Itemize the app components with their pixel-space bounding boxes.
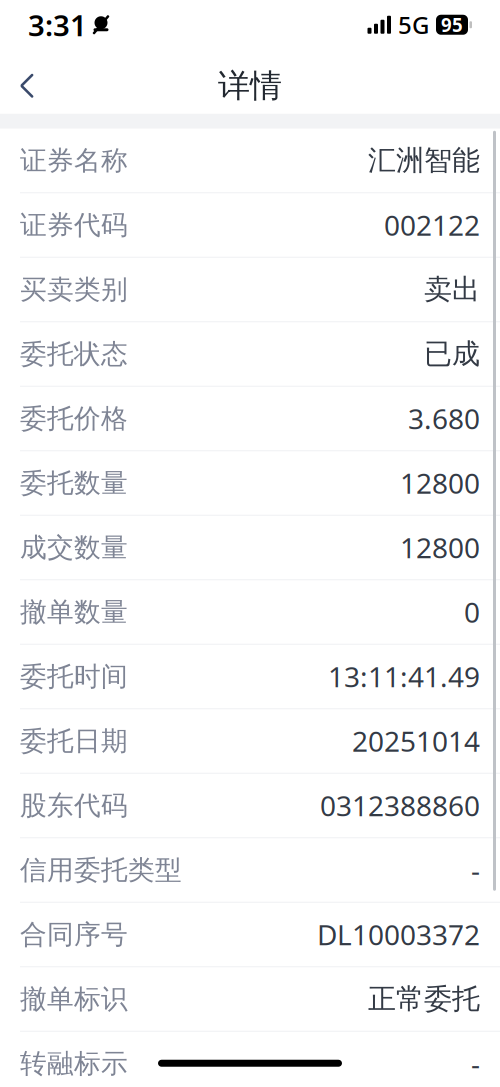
staticText: 委托状态 (20, 338, 128, 370)
staticText: 证券代码 (20, 209, 128, 241)
staticText: - (471, 851, 480, 889)
button[interactable]: 返回 (0, 60, 54, 112)
staticText: 委托日期 (20, 725, 128, 757)
staticText: 合同序号 (20, 918, 128, 951)
staticText: 汇洲智能 (368, 143, 480, 178)
staticText: 详情 (218, 66, 282, 105)
staticText: 3:31 (28, 5, 87, 44)
staticText: 信用委托类型 (20, 854, 182, 886)
staticText: 撤单数量 (20, 596, 128, 628)
staticText: 委托价格 (20, 402, 128, 435)
staticText: 已成 (424, 337, 480, 371)
staticText: 12800 (400, 529, 480, 566)
staticText: 委托数量 (20, 467, 128, 499)
staticText: 13:11:41.49 (328, 658, 480, 695)
staticText: 3.680 (408, 400, 480, 437)
staticText: 正常委托 (368, 982, 480, 1016)
staticText: 95 (441, 12, 463, 37)
staticText: 成交数量 (20, 531, 128, 564)
staticText: 撤单标识 (20, 983, 128, 1015)
staticText: - (471, 1045, 480, 1082)
staticText: 002122 (384, 206, 480, 244)
staticText: DL10003372 (317, 916, 480, 953)
staticText: 12800 (400, 464, 480, 502)
staticText: 5G (398, 9, 429, 41)
staticText: 0312388860 (320, 787, 480, 824)
staticText: 买卖类别 (20, 273, 128, 306)
staticText: 20251014 (352, 722, 480, 760)
staticText: 证券名称 (20, 144, 128, 177)
staticText: 转融标示 (20, 1047, 128, 1080)
staticText: 0 (464, 593, 480, 631)
staticText: 委托时间 (20, 660, 128, 693)
staticText: 卖出 (424, 272, 480, 307)
staticText: 股东代码 (20, 789, 128, 822)
